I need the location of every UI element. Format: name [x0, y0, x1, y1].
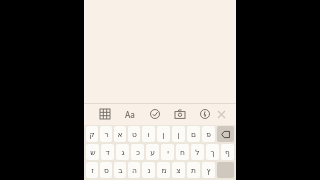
staticText: ל — [195, 148, 200, 157]
button[interactable]: ז — [86, 162, 98, 178]
button[interactable]: ץ — [202, 162, 215, 178]
staticText: ן — [162, 130, 165, 139]
button[interactable]: ב — [114, 162, 126, 178]
staticText: ת — [191, 166, 196, 175]
staticText: ץ — [206, 166, 211, 175]
staticText: א — [117, 130, 123, 139]
button[interactable]: ט — [128, 126, 140, 142]
staticText: ג — [121, 148, 125, 157]
button[interactable]: ף — [221, 144, 234, 160]
button[interactable]: ל — [191, 144, 204, 160]
staticText: ע — [150, 148, 155, 157]
staticText: נ — [147, 166, 151, 175]
button[interactable]: Camera — [173, 107, 187, 121]
staticText: צ — [176, 166, 181, 175]
button[interactable]: Task — [148, 107, 162, 121]
staticText: ש — [90, 148, 96, 157]
button[interactable]: נ — [142, 162, 155, 178]
button[interactable]: פ — [202, 126, 215, 142]
button[interactable]: ן — [157, 126, 170, 142]
button[interactable]: א — [114, 126, 126, 142]
button[interactable]: ן — [172, 126, 185, 142]
button[interactable]: ת — [187, 162, 200, 178]
button[interactable]: י — [161, 144, 174, 160]
button[interactable]: ם — [187, 126, 200, 142]
staticText: Aa — [125, 109, 135, 120]
staticText: ן — [177, 130, 180, 139]
staticText: פ — [206, 130, 211, 139]
button[interactable]: ק — [86, 126, 98, 142]
button[interactable]: ג — [116, 144, 129, 160]
staticText: מ — [161, 166, 167, 175]
staticText: ס — [104, 166, 109, 175]
button[interactable]: ר — [100, 126, 112, 142]
button[interactable]: צ — [172, 162, 185, 178]
button[interactable]: Backspace — [217, 126, 234, 142]
button[interactable]: ה — [128, 162, 140, 178]
button[interactable]: Insert table — [98, 107, 112, 121]
staticText: ר — [104, 130, 109, 139]
staticText: כ — [136, 148, 140, 157]
staticText: ם — [191, 130, 196, 139]
staticText: ו — [147, 130, 150, 139]
button[interactable]: ע — [146, 144, 159, 160]
button[interactable]: ד — [101, 144, 114, 160]
staticText: ף — [225, 148, 230, 157]
button[interactable]: ש — [86, 144, 99, 160]
staticText: ה — [132, 166, 137, 175]
button[interactable]: Close — [214, 107, 228, 121]
staticText: ט — [132, 130, 137, 139]
staticText: ך — [210, 148, 215, 157]
button[interactable]: ך — [206, 144, 219, 160]
button[interactable]: ס — [100, 162, 112, 178]
button[interactable]: ח — [176, 144, 189, 160]
staticText: ב — [118, 166, 123, 175]
staticText: ק — [89, 130, 95, 139]
staticText: ח — [180, 148, 185, 157]
button[interactable]: Draw — [198, 107, 212, 121]
staticText: ד — [105, 148, 110, 157]
staticText: י — [167, 148, 169, 157]
button[interactable]: Text formatting — [123, 107, 137, 121]
staticText: ז — [91, 166, 94, 175]
button[interactable]: מ — [157, 162, 170, 178]
button[interactable]: ו — [142, 126, 155, 142]
button[interactable]: כ — [131, 144, 144, 160]
